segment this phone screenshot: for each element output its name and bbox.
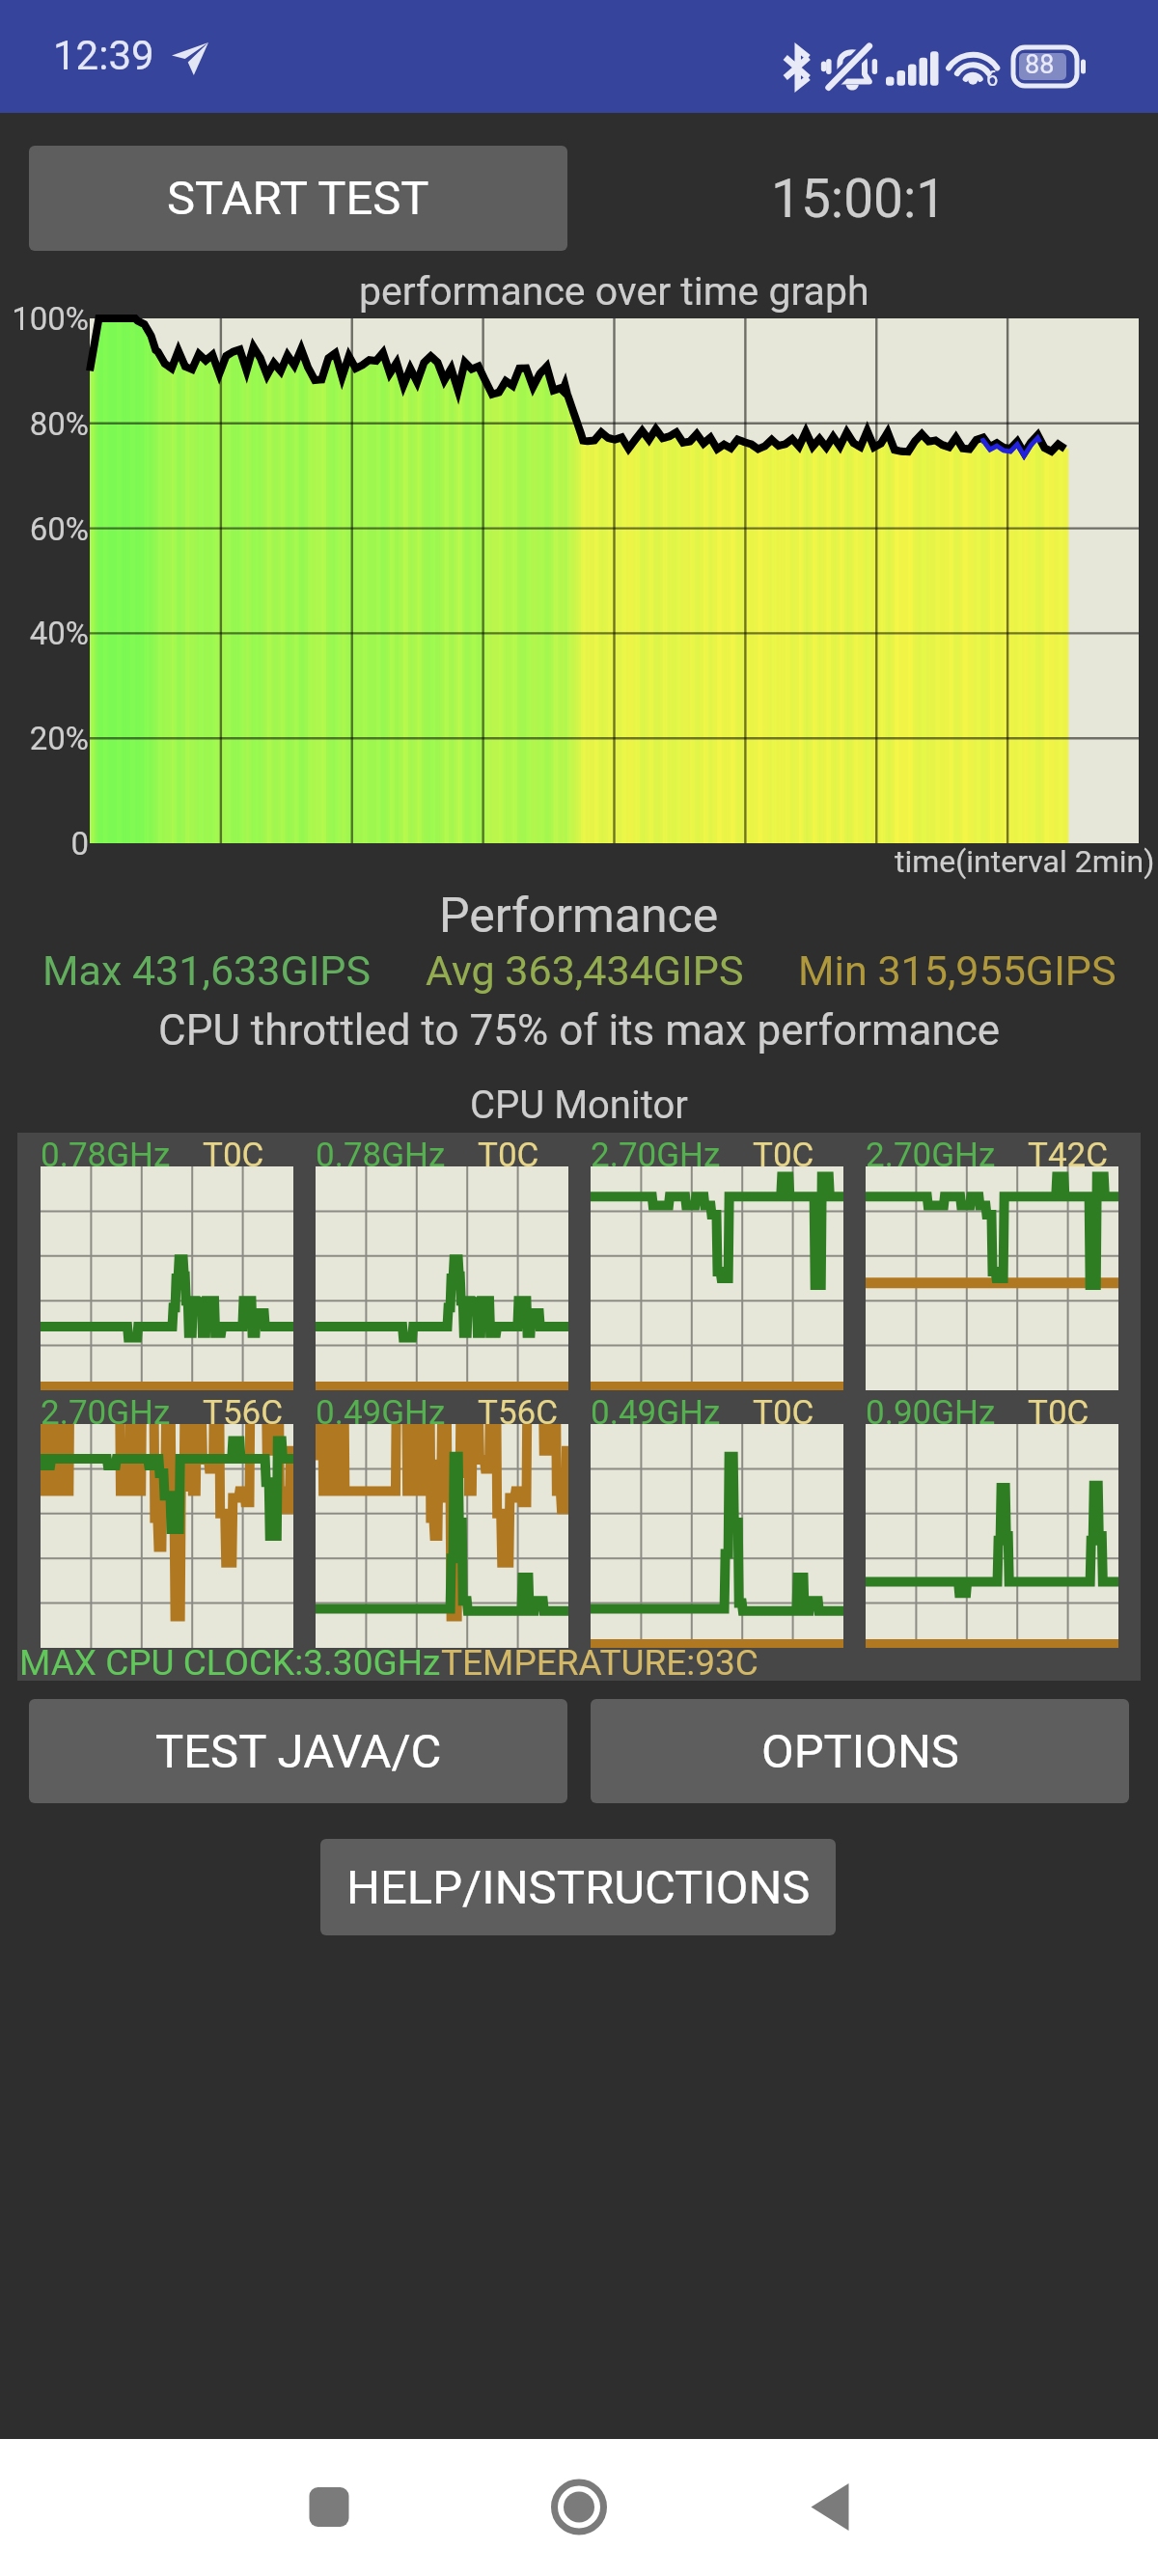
staticText: 2.70GHz bbox=[41, 1393, 171, 1433]
staticText: 80% bbox=[0, 405, 89, 443]
staticText: 6 bbox=[986, 67, 999, 92]
staticText: T0C bbox=[753, 1136, 814, 1175]
staticText: T42C bbox=[1028, 1136, 1109, 1175]
staticText: Avg 363,434GIPS bbox=[426, 946, 744, 995]
button[interactable]: START TEST bbox=[29, 146, 567, 251]
staticText: 60% bbox=[0, 510, 89, 548]
staticText: CPU throttled to 75% of its max performa… bbox=[158, 1005, 1001, 1055]
staticText: performance over time graph bbox=[359, 268, 869, 315]
staticText: T0C bbox=[1028, 1393, 1089, 1433]
staticText: 2.70GHz bbox=[866, 1136, 996, 1175]
staticText: T0C bbox=[478, 1136, 539, 1175]
staticText: 0.90GHz bbox=[866, 1393, 996, 1433]
staticText: CPU Monitor bbox=[470, 1082, 688, 1128]
staticText: 20% bbox=[0, 720, 89, 757]
staticText: T56C bbox=[478, 1393, 559, 1433]
staticText: Max 431,633GIPS bbox=[42, 946, 372, 995]
staticText: T0C bbox=[753, 1393, 814, 1433]
staticText: 0.49GHz bbox=[591, 1393, 721, 1433]
staticText: 100% bbox=[0, 300, 89, 338]
staticText: 0.49GHz bbox=[316, 1393, 446, 1433]
staticText: TEMPERATURE:93C bbox=[441, 1642, 758, 1684]
staticText: HELP/INSTRUCTIONS bbox=[346, 1860, 811, 1915]
button[interactable]: OPTIONS bbox=[591, 1699, 1129, 1803]
button[interactable]: Recent apps bbox=[271, 2439, 387, 2576]
staticText: 0.78GHz bbox=[316, 1136, 446, 1175]
staticText: START TEST bbox=[167, 171, 429, 226]
button[interactable]: HELP/INSTRUCTIONS bbox=[320, 1839, 836, 1935]
staticText: 40% bbox=[0, 615, 89, 652]
staticText: T0C bbox=[203, 1136, 264, 1175]
staticText: 0.78GHz bbox=[41, 1136, 171, 1175]
staticText: MAX CPU CLOCK:3.30GHz bbox=[19, 1642, 441, 1684]
button[interactable]: TEST JAVA/C bbox=[29, 1699, 567, 1803]
staticText: Min 315,955GIPS bbox=[798, 946, 1117, 995]
staticText: T56C bbox=[203, 1393, 284, 1433]
staticText: 88 bbox=[1025, 49, 1055, 80]
button[interactable]: Home bbox=[521, 2439, 637, 2576]
staticText: time(interval 2min) bbox=[895, 843, 1155, 880]
staticText: Performance bbox=[439, 888, 719, 945]
button[interactable]: Back bbox=[772, 2439, 888, 2576]
staticText: OPTIONS bbox=[761, 1724, 959, 1779]
staticText: 15:00:1 bbox=[771, 168, 947, 230]
staticText: 2.70GHz bbox=[591, 1136, 721, 1175]
staticText: TEST JAVA/C bbox=[155, 1724, 442, 1779]
staticText: 12:39 bbox=[53, 32, 154, 79]
staticText: 0 bbox=[0, 825, 89, 863]
